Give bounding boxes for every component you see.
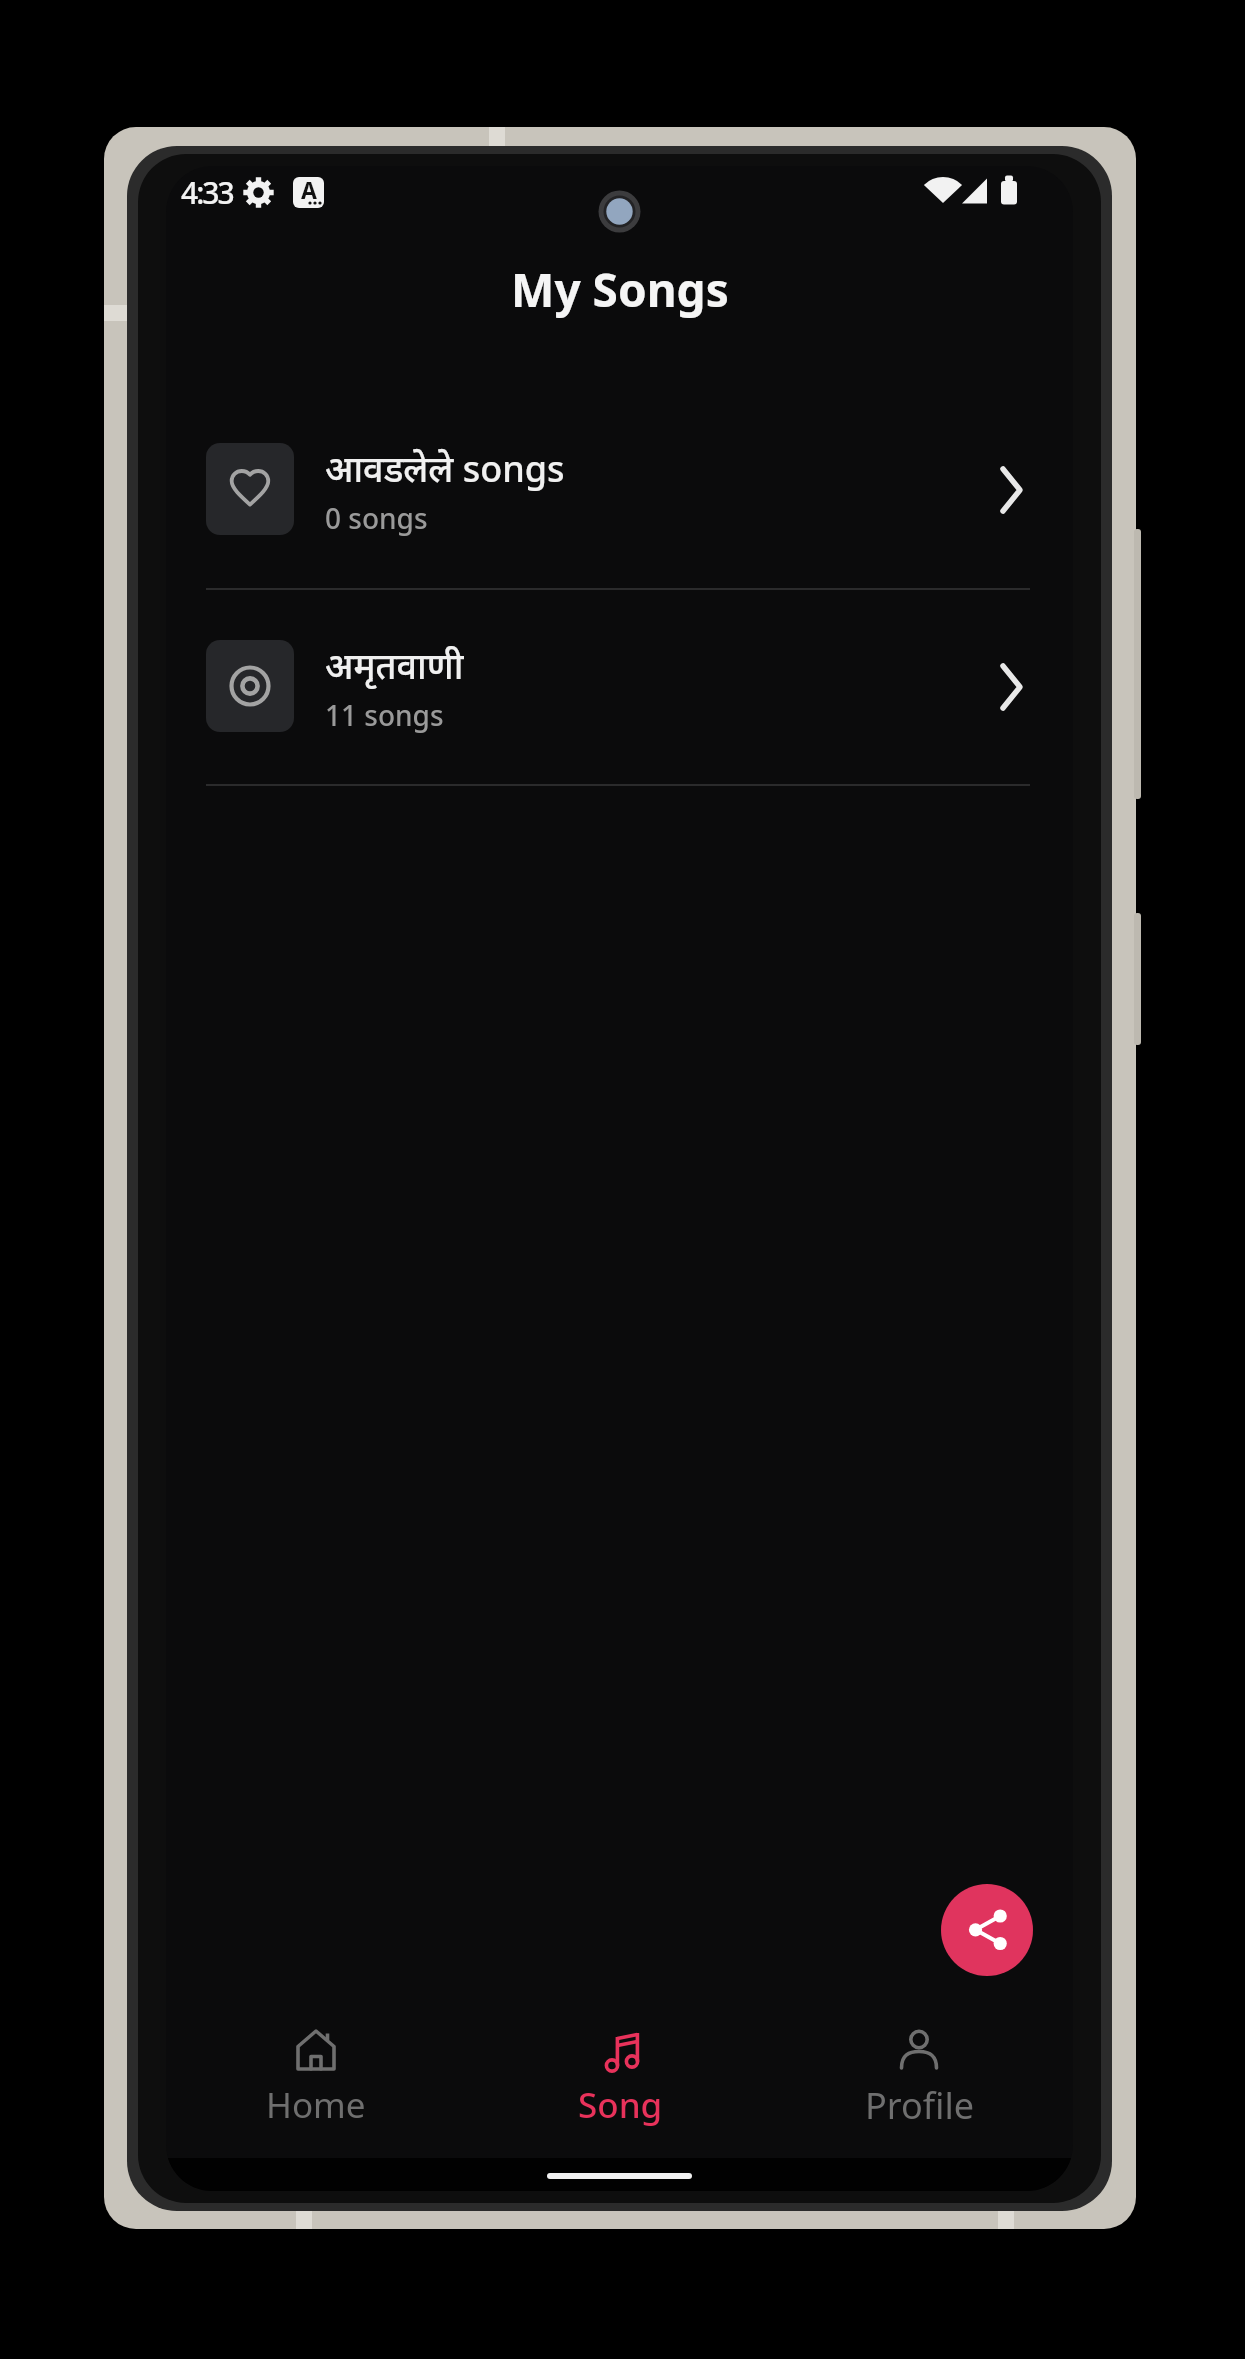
button[interactable] (941, 1884, 1033, 1976)
staticText: 4:33 (181, 172, 233, 213)
staticText: A (301, 177, 317, 205)
staticText: Profile (865, 2081, 974, 2130)
staticText: 11 songs (325, 696, 444, 734)
button[interactable]: Profile (819, 2018, 1019, 2158)
button[interactable]: अमृतवाणी (206, 634, 1030, 738)
staticText: अमृतवाणी (325, 641, 464, 690)
staticText: Song (578, 2081, 663, 2129)
button[interactable]: Home (216, 2018, 416, 2158)
staticText: 0 songs (325, 499, 428, 537)
button[interactable]: Song (520, 2018, 720, 2158)
button[interactable]: आवडलेले songs (206, 437, 1030, 541)
staticText: Home (266, 2081, 366, 2129)
staticText: आवडलेले songs (325, 444, 565, 493)
staticText: My Songs (511, 258, 729, 321)
